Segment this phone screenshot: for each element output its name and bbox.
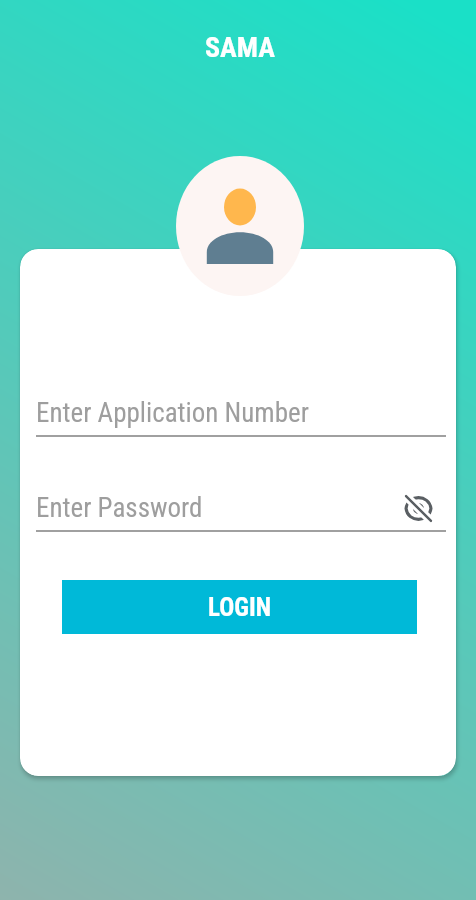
button[interactable]: LOGIN	[62, 580, 417, 634]
staticText: LOGIN	[208, 593, 271, 622]
staticText: Enter Password	[36, 492, 203, 524]
button[interactable]: Show password	[400, 490, 436, 526]
staticText: Enter Application Number	[36, 397, 309, 429]
button[interactable]: Enter Application Number	[36, 392, 446, 434]
staticText: SAMA	[2, 31, 476, 64]
button[interactable]: Enter Password	[36, 487, 446, 529]
